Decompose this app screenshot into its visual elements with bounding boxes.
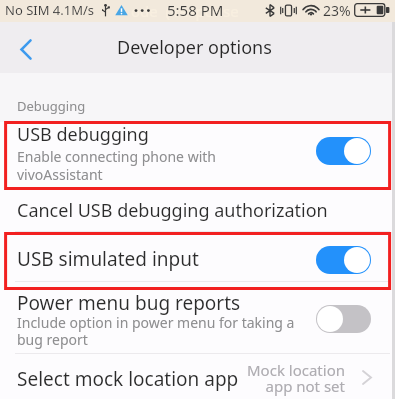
staticText: Enable connecting phone with vivoAssista… (17, 147, 216, 184)
staticText: 23% (323, 1, 351, 20)
button[interactable]: Switch on (316, 137, 371, 165)
button[interactable]: Power menu bug reports (0, 282, 395, 354)
staticText: USB simulated input (17, 246, 199, 272)
staticText: No SIM 4.1M/s (5, 1, 95, 19)
button[interactable]: USB debugging (0, 122, 395, 188)
staticText: Include option in power menu for taking … (17, 313, 295, 349)
staticText: Power menu bug reports (17, 290, 241, 316)
button[interactable]: Switch on (316, 246, 371, 274)
staticText: Developer options (117, 35, 272, 60)
staticText: ode ( response (131, 1, 239, 21)
staticText: 5:58 PM (167, 0, 224, 20)
staticText: Cancel USB debugging authorization (17, 198, 328, 223)
button[interactable]: Back (0, 22, 52, 73)
staticText: Debugging (17, 97, 86, 115)
button[interactable]: Cancel USB debugging authorization (0, 188, 395, 232)
staticText: Select mock location app (17, 366, 239, 392)
button[interactable]: Select mock location app (0, 354, 395, 399)
staticText: USB debugging (17, 122, 149, 147)
button[interactable]: Switch off (316, 305, 371, 333)
button[interactable]: USB simulated input (0, 232, 395, 282)
staticText: Mock location app not set (247, 360, 345, 396)
